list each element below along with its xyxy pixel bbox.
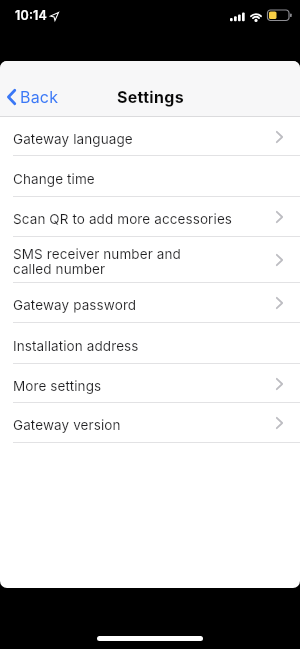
staticText: Back — [20, 87, 59, 106]
staticText: Change time — [13, 171, 95, 187]
button[interactable]: Scan QR to add more accessories — [0, 197, 300, 237]
staticText: Gateway version — [13, 417, 121, 433]
staticText: 10:14 — [15, 8, 48, 23]
button[interactable]: Gateway version — [0, 403, 300, 443]
staticText: Gateway password — [13, 297, 137, 313]
button[interactable]: Change time — [0, 156, 300, 197]
staticText: Settings — [117, 87, 184, 106]
staticText: Installation address — [13, 338, 139, 354]
button[interactable]: More settings — [0, 364, 300, 403]
button[interactable]: SMS receiver number and called number — [0, 237, 300, 283]
button[interactable]: Gateway password — [0, 283, 300, 323]
button[interactable]: Back — [0, 87, 59, 106]
button[interactable]: Gateway language — [0, 117, 300, 156]
staticText: Gateway language — [13, 131, 133, 147]
button[interactable]: Installation address — [0, 323, 300, 364]
staticText: SMS receiver number and called number — [13, 246, 181, 278]
staticText: Scan QR to add more accessories — [13, 211, 233, 227]
staticText: More settings — [13, 378, 102, 394]
